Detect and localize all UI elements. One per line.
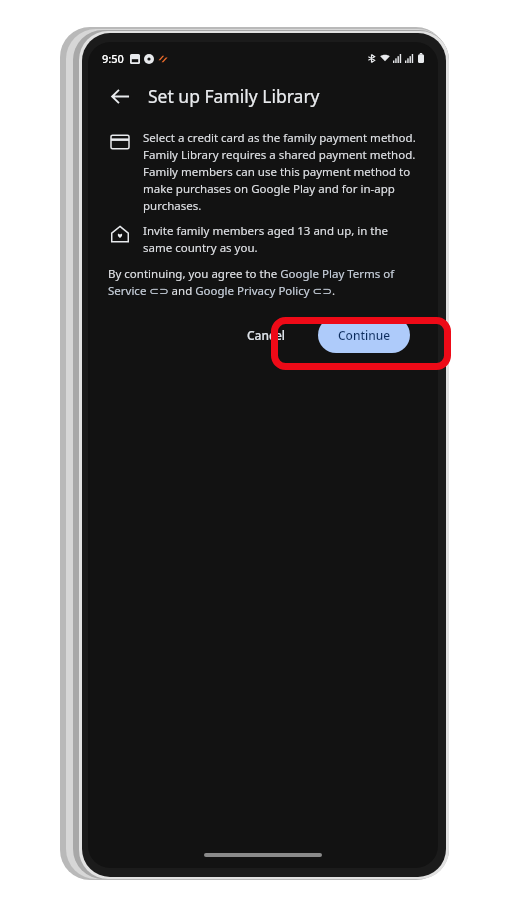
button[interactable]: Back xyxy=(102,78,138,114)
staticText: 9:50 xyxy=(102,51,124,66)
staticText: Set up Family Library xyxy=(148,84,320,108)
staticText: Select a credit card as the family payme… xyxy=(143,130,416,213)
button[interactable]: Cancel xyxy=(231,318,302,352)
staticText: Invite family members aged 13 and up, in… xyxy=(143,223,416,255)
staticText: Cancel xyxy=(247,327,286,343)
staticText: By continuing, you agree to the Google P… xyxy=(108,266,416,299)
button[interactable]: Continue xyxy=(318,317,410,353)
staticText: Continue xyxy=(338,327,391,343)
